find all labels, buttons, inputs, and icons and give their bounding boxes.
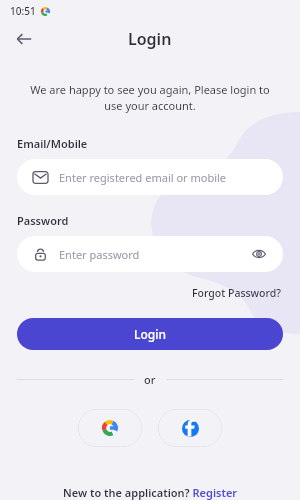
staticText: Enter registered email or mobile xyxy=(59,170,227,185)
button[interactable]: Sign in with Google xyxy=(78,409,142,447)
button[interactable]: Back xyxy=(10,25,38,53)
button[interactable]: Forgot Password? xyxy=(190,284,283,302)
staticText: or xyxy=(144,372,156,387)
button[interactable]: Sign in with Facebook xyxy=(158,409,222,447)
staticText: 10:51 xyxy=(10,4,36,18)
staticText: Password xyxy=(17,213,69,228)
staticText: Forgot Password? xyxy=(192,286,281,300)
staticText: We are happy to see you again, Please lo… xyxy=(22,82,278,114)
staticText: Email/Mobile xyxy=(17,136,88,151)
staticText: Login xyxy=(134,326,166,342)
button[interactable]: New to the application? Register xyxy=(0,485,300,500)
button[interactable]: Enter password xyxy=(17,236,283,272)
staticText: New to the application? Register xyxy=(63,485,238,500)
staticText: Enter password xyxy=(59,247,249,262)
button[interactable]: Show password xyxy=(249,244,269,264)
button[interactable]: Enter registered email or mobile xyxy=(17,159,283,195)
button[interactable]: Login xyxy=(17,318,283,350)
staticText: Login xyxy=(128,28,172,50)
